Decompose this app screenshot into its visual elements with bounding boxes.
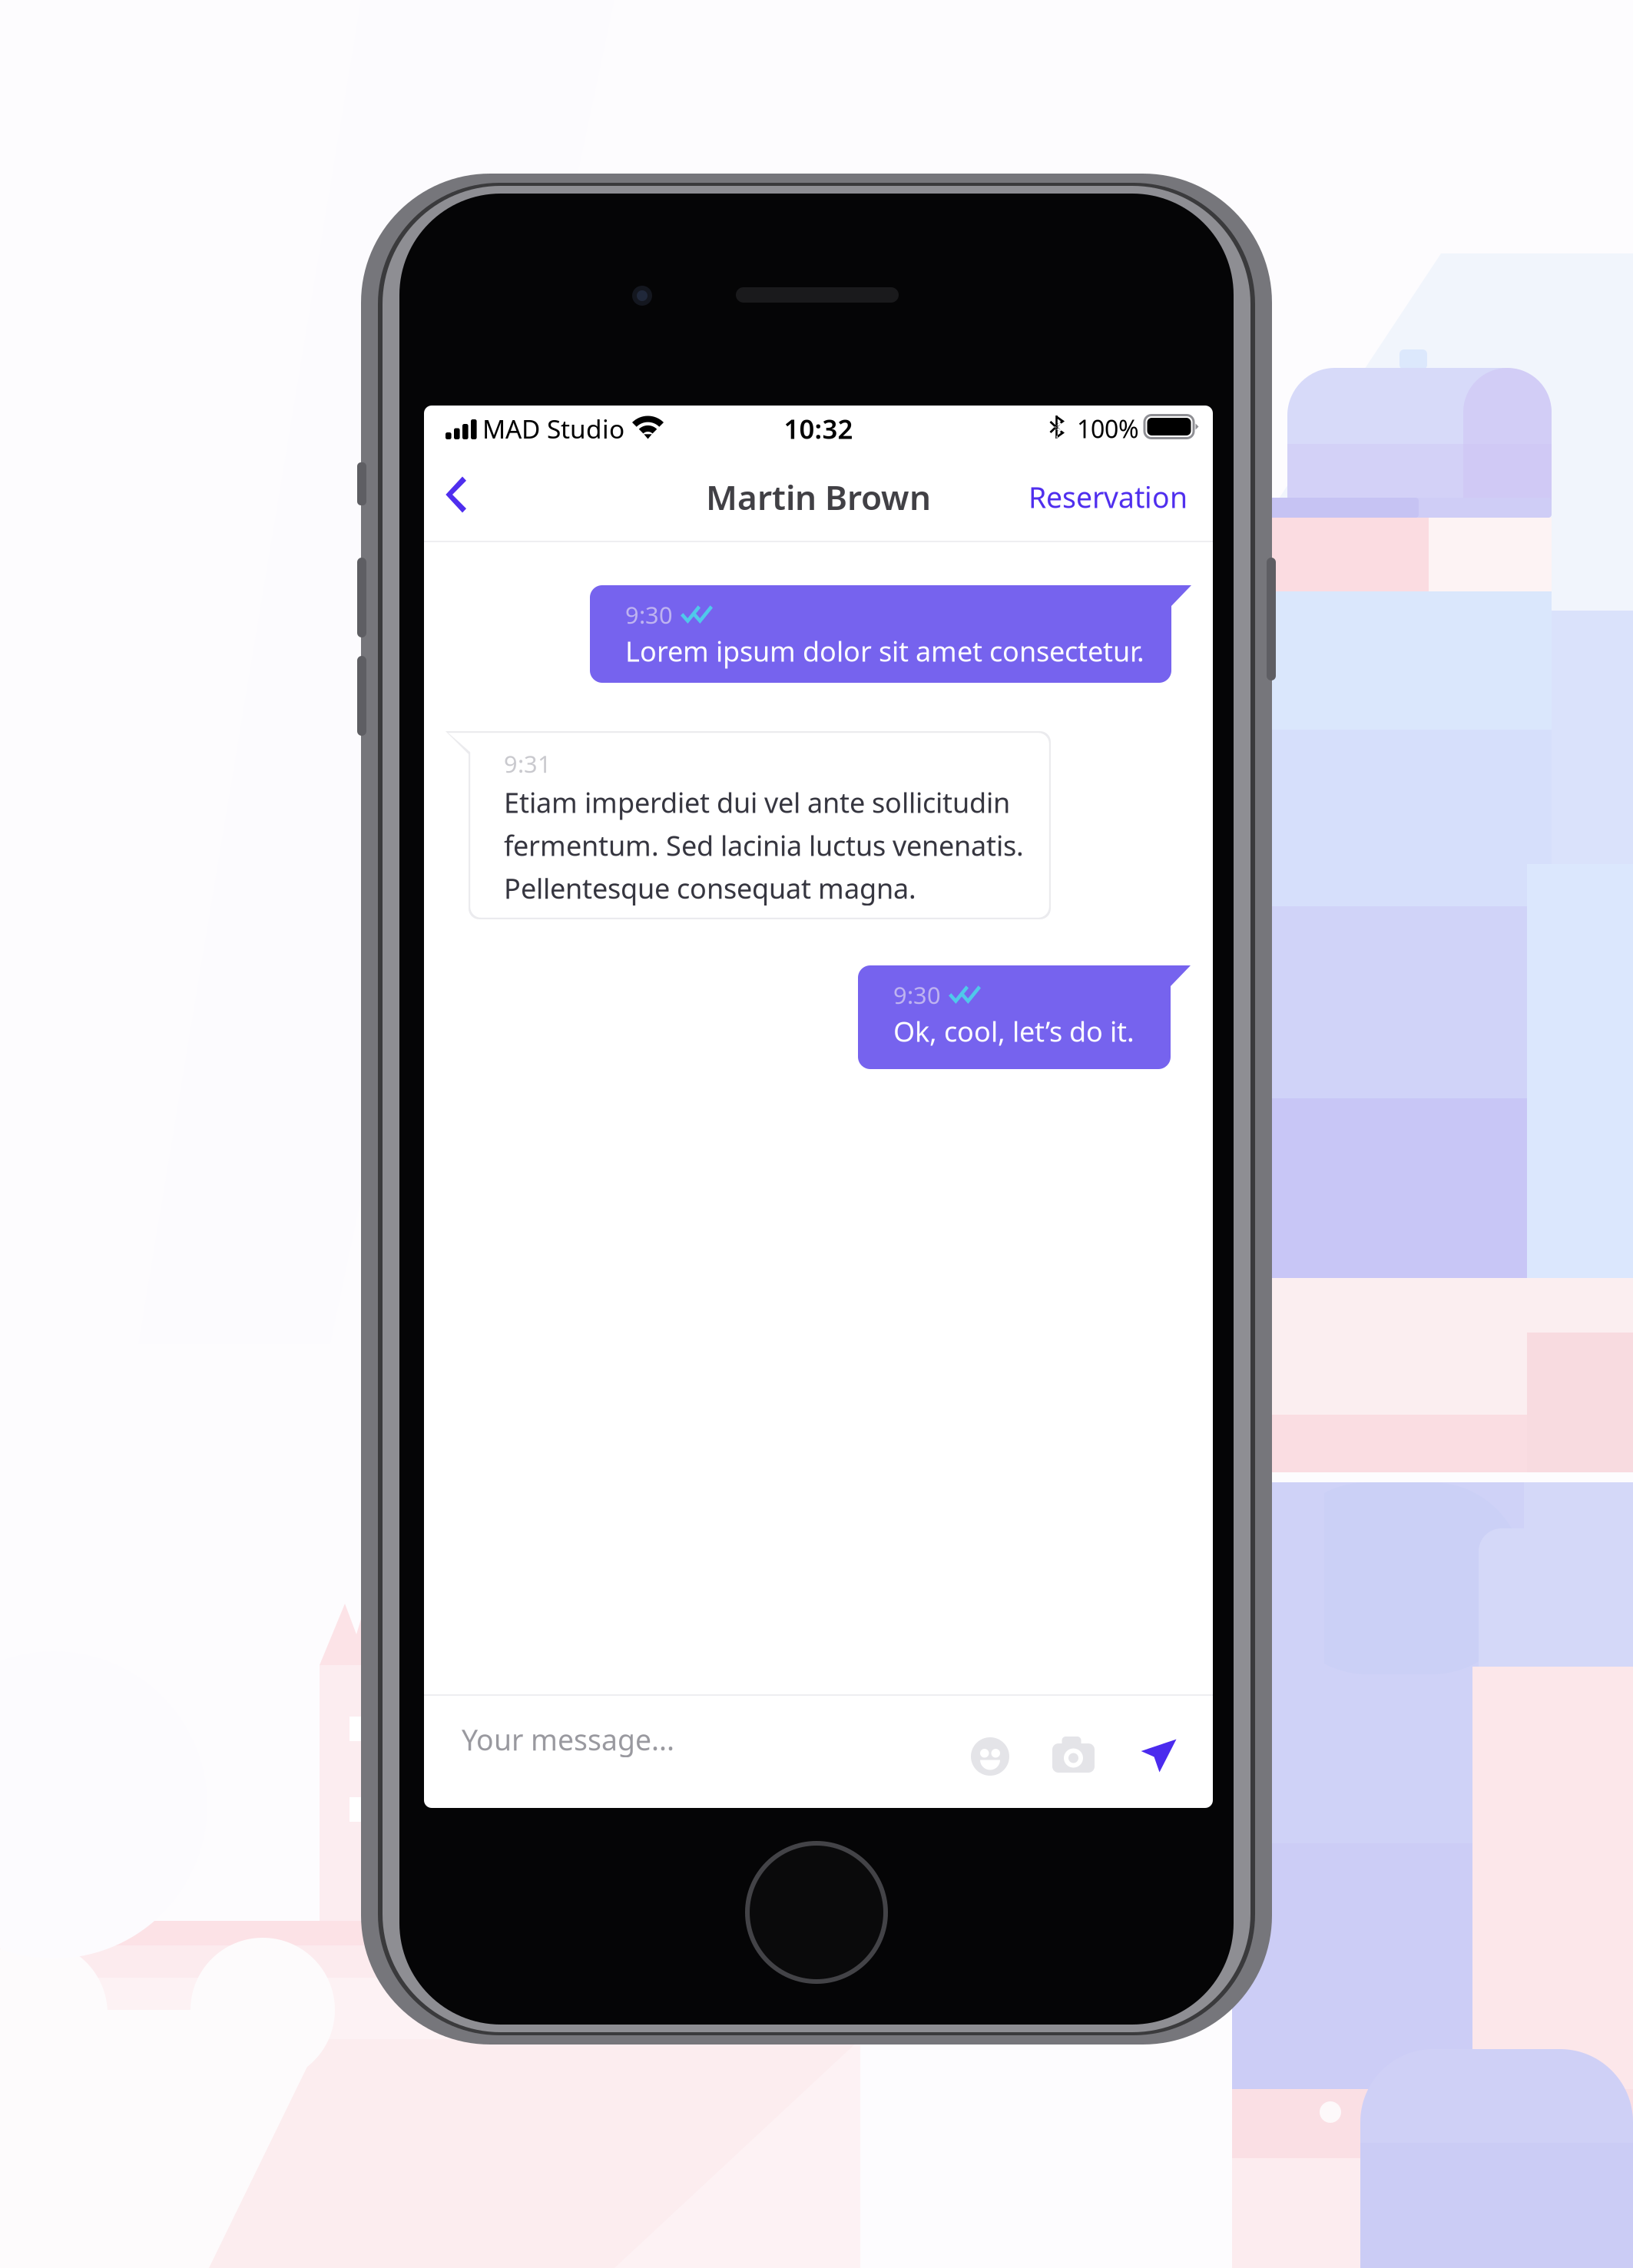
staticText: Martin Brown: [706, 474, 931, 519]
staticText: 9:30: [625, 599, 673, 630]
staticText: 9:31: [504, 748, 552, 779]
button[interactable]: Back: [424, 406, 508, 476]
staticText: MAD Studio: [482, 412, 624, 446]
button[interactable]: Reservation: [424, 406, 608, 476]
staticText: Reservation: [1028, 478, 1187, 516]
staticText: 9:30: [893, 979, 941, 1011]
button[interactable]: Camera: [424, 406, 466, 442]
staticText: Pellentesque consequat magna.: [504, 870, 916, 906]
staticText: Your message...: [462, 1720, 674, 1758]
staticText: Lorem ipsum dolor sit amet consectetur.: [625, 633, 1144, 669]
staticText: Ok, cool, let’s do it.: [893, 1013, 1134, 1050]
button[interactable]: Send: [424, 406, 460, 439]
staticText: 10:32: [784, 411, 853, 446]
staticText: fermentum. Sed lacinia luctus venenatis.: [504, 827, 1024, 863]
staticText: 100%: [1077, 412, 1139, 445]
button[interactable]: Emoji: [424, 406, 462, 444]
staticText: Etiam imperdiet dui vel ante sollicitudi…: [504, 784, 1010, 821]
